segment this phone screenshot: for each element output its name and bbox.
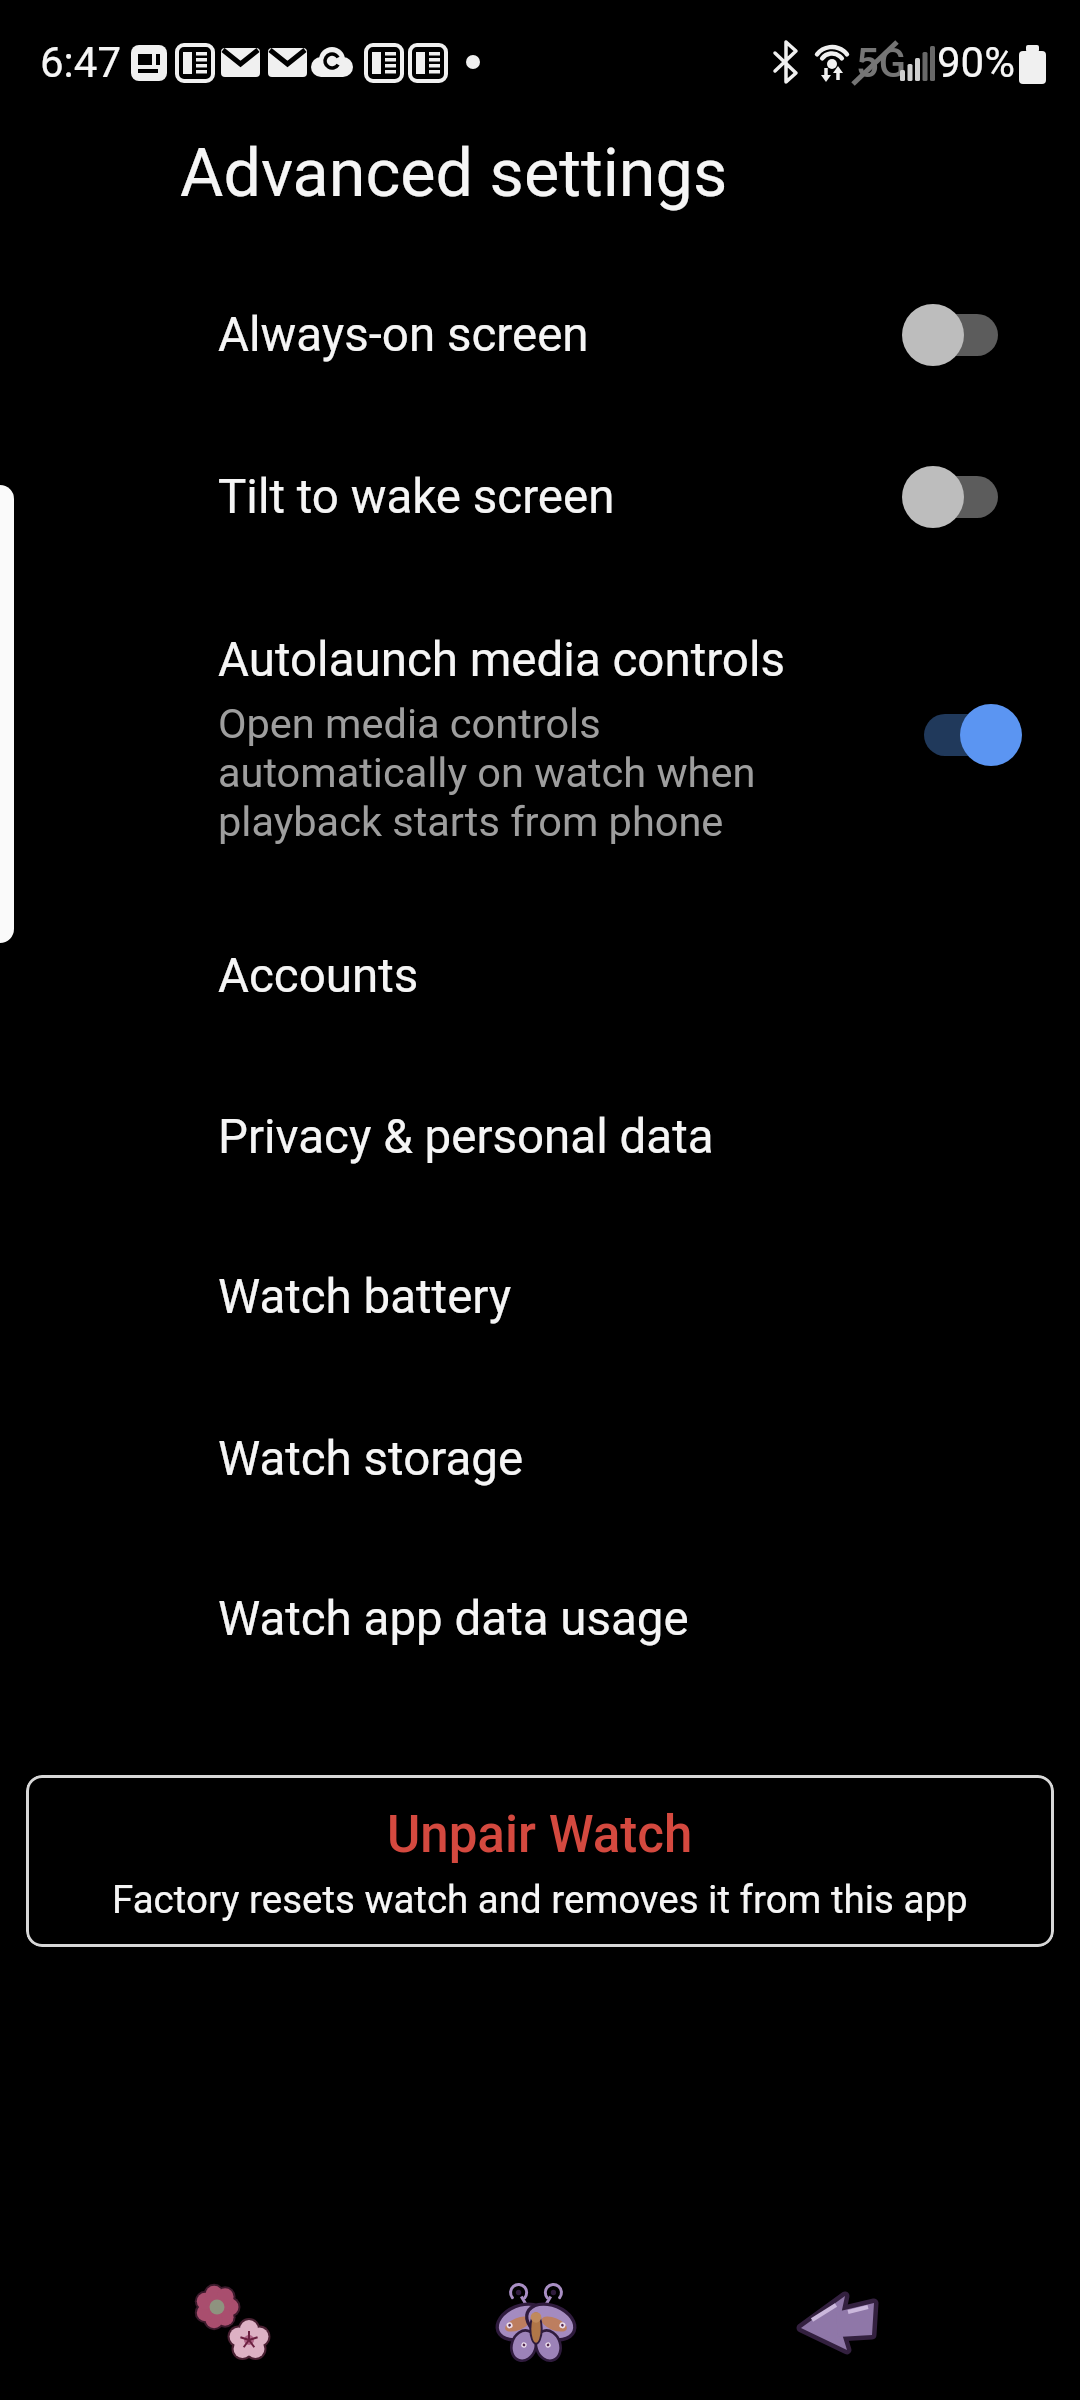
button[interactable] xyxy=(895,301,1025,369)
button[interactable] xyxy=(895,701,1025,769)
staticText: Open media controls automatically on wat… xyxy=(218,699,756,846)
staticText: Always-on screen xyxy=(218,307,589,363)
button[interactable]: Watch storage xyxy=(0,1409,1080,1509)
button[interactable] xyxy=(760,2260,920,2390)
staticText: Watch storage xyxy=(218,1431,524,1487)
staticText: Factory resets watch and removes it from… xyxy=(112,1877,968,1922)
button[interactable]: Watch battery xyxy=(0,1247,1080,1347)
button[interactable] xyxy=(895,463,1025,531)
staticText: Tilt to wake screen xyxy=(218,469,615,525)
staticText: 5G xyxy=(856,40,906,87)
staticText: Unpair Watch xyxy=(387,1805,693,1865)
button[interactable]: Privacy & personal data xyxy=(0,1087,1080,1187)
staticText: Advanced settings xyxy=(180,134,728,212)
staticText: Watch app data usage xyxy=(218,1591,689,1647)
button[interactable]: Watch app data usage xyxy=(0,1569,1080,1669)
button[interactable]: Always-on screen xyxy=(0,285,1080,385)
button[interactable] xyxy=(157,2260,317,2390)
button[interactable]: Tilt to wake screen xyxy=(0,447,1080,547)
staticText: Accounts xyxy=(218,948,419,1004)
button[interactable] xyxy=(460,2260,620,2390)
staticText: Privacy & personal data xyxy=(218,1109,714,1165)
staticText: Autolaunch media controls xyxy=(218,632,786,688)
staticText: 6:47 xyxy=(40,38,121,87)
button[interactable]: Unpair Watch xyxy=(26,1775,1054,1947)
button[interactable]: Accounts xyxy=(0,926,1080,1026)
staticText: 90% xyxy=(937,38,1015,87)
button[interactable]: Autolaunch media controls xyxy=(0,610,1080,710)
staticText: Watch battery xyxy=(218,1269,512,1325)
